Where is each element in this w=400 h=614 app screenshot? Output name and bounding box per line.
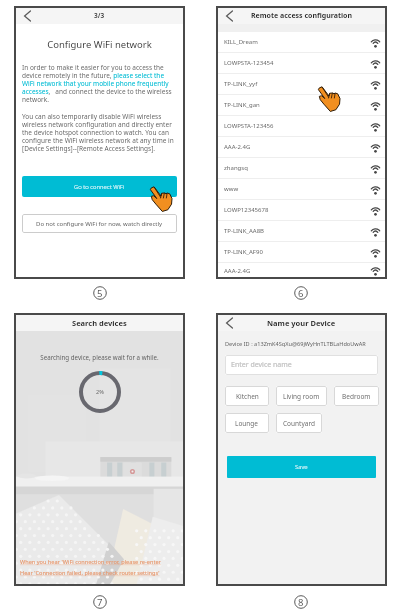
button[interactable]: Back	[222, 9, 236, 23]
button[interactable]: Do not configure WiFi for now, watch dir…	[22, 214, 177, 233]
button[interactable]: AAA-2.4G	[217, 137, 386, 157]
button[interactable]: Back	[222, 316, 236, 330]
staticText: Living room	[283, 392, 320, 401]
button[interactable]: LOWP12345678	[217, 200, 386, 220]
button[interactable]: TP-LINK_AF90	[217, 242, 386, 262]
button[interactable]: Enter device name	[225, 355, 378, 375]
staticText: 6	[298, 287, 304, 300]
staticText: Lounge	[235, 419, 259, 428]
staticText: You can also temporarily disable WiFi wi…	[22, 112, 177, 153]
button[interactable]: LOWPSTA-123454	[217, 53, 386, 73]
button[interactable]: Go to connect WiFi	[22, 176, 177, 197]
staticText: Go to connect WiFi	[74, 183, 125, 191]
staticText: KILL_Dream	[224, 38, 371, 46]
staticText: www	[224, 185, 371, 193]
staticText: TP-LINK_AF90	[224, 248, 371, 256]
button[interactable]: www	[217, 179, 386, 199]
button[interactable]: zhangsq	[217, 158, 386, 178]
button[interactable]: TP-LINK_gan	[217, 95, 386, 115]
button[interactable]: KILL_Dream	[217, 32, 386, 52]
button[interactable]: AAA-2.4G	[217, 263, 386, 278]
staticText: 8	[298, 596, 304, 609]
staticText: Search devices	[72, 318, 127, 328]
staticText: 7	[97, 596, 103, 609]
button[interactable]: Living room	[276, 386, 327, 406]
button[interactable]: Back	[20, 9, 34, 23]
button[interactable]: TP-LINK_AA8B	[217, 221, 386, 241]
staticText: LOWPSTA-123454	[224, 59, 371, 67]
staticText: Remote access configuration	[251, 11, 352, 21]
staticText: TP-LINK_AA8B	[224, 227, 371, 235]
button[interactable]: TP-LINK_yyf	[217, 74, 386, 94]
staticText: 5	[97, 287, 103, 300]
staticText: Enter device name	[231, 360, 292, 370]
button[interactable]: LOWPSTA-123456	[217, 116, 386, 136]
button[interactable]: Countyard	[276, 413, 322, 433]
button[interactable]: Lounge	[225, 413, 269, 433]
staticText: Kitchen	[236, 392, 259, 401]
staticText: TP-LINK_gan	[224, 101, 371, 109]
staticText: When you hear 'WiFi connection error, pl…	[20, 558, 161, 566]
staticText: Hear 'Connection failed, please check ro…	[20, 569, 160, 577]
staticText: 2%	[96, 388, 104, 396]
staticText: Save	[295, 463, 308, 471]
staticText: Name your Device	[267, 318, 336, 328]
staticText: Configure WiFi network	[15, 38, 184, 51]
staticText: Bedroom	[342, 392, 371, 401]
button[interactable]: Kitchen	[225, 386, 269, 406]
staticText: TP-LINK_yyf	[224, 80, 371, 88]
staticText: AAA-2.4G	[224, 143, 371, 151]
button[interactable]: Bedroom	[334, 386, 379, 406]
staticText: Do not configure WiFi for now, watch dir…	[36, 220, 163, 228]
staticText: Device ID : a13ZmK4SqXu@69jWyHnTLTBLaHdo…	[225, 340, 366, 348]
staticText: In order to make it easier for you to ac…	[22, 63, 177, 104]
staticText: Searching device, please wait for a whil…	[15, 353, 184, 361]
button[interactable]: Save	[227, 456, 376, 478]
staticText: AAA-2.4G	[224, 267, 371, 275]
staticText: Countyard	[283, 419, 315, 428]
staticText: LOWP12345678	[224, 206, 371, 214]
staticText: LOWPSTA-123456	[224, 122, 371, 130]
staticText: zhangsq	[224, 164, 371, 172]
staticText: 3/3	[94, 11, 105, 20]
